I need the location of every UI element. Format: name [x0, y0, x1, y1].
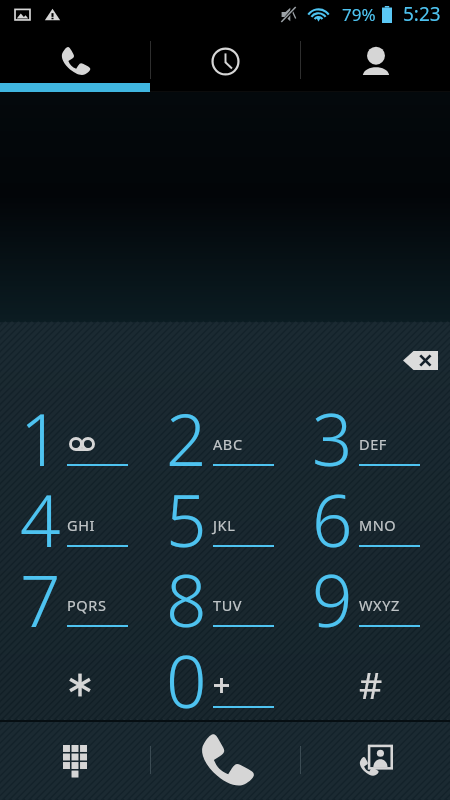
button[interactable]: key 4 — [0, 483, 146, 564]
staticText: 5 — [166, 471, 207, 568]
staticText: JKL — [213, 515, 236, 535]
button[interactable]: key 3 — [292, 402, 438, 483]
button[interactable]: key 7 — [0, 563, 146, 644]
other: Dialpad — [63, 745, 87, 776]
button[interactable]: Add to contacts — [301, 720, 450, 800]
button[interactable]: key 2 — [146, 402, 292, 483]
button[interactable]: key 5 — [146, 483, 292, 564]
other: Dialer tab — [58, 44, 92, 78]
button[interactable]: Call log tab — [151, 28, 300, 92]
other: Call — [195, 729, 257, 791]
button[interactable]: key 8 — [146, 563, 292, 644]
staticText: WXYZ — [359, 595, 400, 615]
staticText: 79% — [342, 3, 376, 26]
staticText: DEF — [359, 434, 387, 454]
staticText: 8 — [166, 551, 207, 648]
staticText: 2 — [166, 390, 207, 487]
button[interactable]: Call — [151, 720, 300, 800]
staticText: 5:23 — [403, 1, 441, 27]
staticText: 4 — [20, 471, 61, 568]
staticText: 3 — [312, 390, 353, 487]
button[interactable]: key 6 — [292, 483, 438, 564]
button[interactable]: key # — [292, 644, 438, 725]
staticText: 1 — [20, 390, 61, 487]
button[interactable]: key * — [0, 644, 146, 725]
staticText: GHI — [67, 515, 96, 535]
staticText: 9 — [312, 551, 353, 648]
button[interactable]: key 1 — [0, 402, 146, 483]
staticText: TUV — [213, 595, 243, 615]
staticText: ABC — [213, 434, 243, 454]
button[interactable]: Contacts tab — [301, 28, 450, 92]
staticText: # — [359, 661, 383, 710]
staticText: MNO — [359, 515, 397, 535]
other: Contacts tab — [362, 47, 390, 75]
button[interactable]: key 0 — [146, 644, 292, 725]
staticText: 6 — [312, 471, 353, 568]
other: Call log tab — [212, 48, 239, 75]
staticText: 7 — [20, 551, 61, 648]
staticText: PQRS — [67, 595, 107, 615]
other: Add to contacts — [359, 744, 393, 776]
button[interactable]: Dialpad — [0, 720, 150, 800]
button[interactable]: Backspace — [394, 339, 446, 381]
button[interactable]: key 9 — [292, 563, 438, 644]
button[interactable]: Dialer tab — [0, 28, 150, 92]
staticText: 0 — [166, 632, 207, 729]
